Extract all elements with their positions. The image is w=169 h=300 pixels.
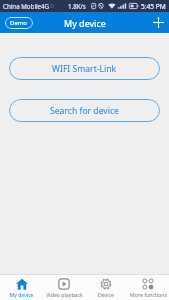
button[interactable]: Video playback [43,275,85,300]
button[interactable]: WIFI Smart-Link [9,57,160,80]
button[interactable]: Search for device [9,99,160,122]
staticText: Video playback [46,291,83,298]
staticText: My device [64,17,106,29]
staticText: Device [98,291,114,298]
button[interactable]: More functions [127,275,169,300]
staticText: Search for device [50,105,119,117]
button[interactable]: Demo [5,17,33,29]
staticText: 1.8K/s [68,2,86,10]
button[interactable]: Add device [148,12,169,33]
staticText: WIFI Smart-Link [52,63,117,75]
staticText: 5:45 PM [141,2,166,11]
button[interactable]: My device [0,275,43,300]
staticText: Demo [10,19,28,27]
staticText: My device [9,291,34,298]
staticText: China Mobile4G [3,2,50,10]
button[interactable]: Device [85,275,127,300]
staticText: More functions [130,291,167,298]
